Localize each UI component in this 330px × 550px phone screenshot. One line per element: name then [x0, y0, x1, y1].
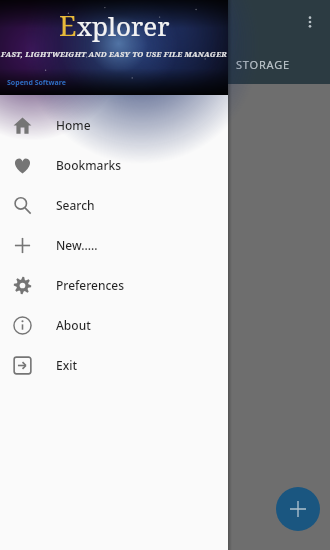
staticText: New.....: [56, 237, 98, 253]
button[interactable]: Bookmarks: [0, 145, 228, 185]
button[interactable]: New.....: [0, 225, 228, 265]
button[interactable]: Exit: [0, 345, 228, 385]
button[interactable]: Home: [0, 105, 228, 145]
button[interactable]: More options: [294, 6, 326, 38]
button[interactable]: About: [0, 305, 228, 345]
button[interactable]: Add: [276, 487, 320, 531]
staticText: Search: [56, 197, 95, 213]
staticText: Home: [56, 117, 91, 133]
staticText: xplorer: [77, 8, 170, 43]
staticText: Preferences: [56, 277, 125, 293]
staticText: About: [56, 317, 91, 333]
staticText: Sopend Software: [7, 78, 66, 88]
button[interactable]: Preferences: [0, 265, 228, 305]
staticText: STORAGE: [236, 57, 290, 72]
staticText: Exit: [56, 357, 78, 373]
button[interactable]: Search: [0, 185, 228, 225]
staticText: E: [59, 6, 77, 44]
staticText: Bookmarks: [56, 157, 122, 173]
staticText: FAST, LIGHTWEIGHT AND EASY TO USE FILE M…: [1, 49, 227, 59]
